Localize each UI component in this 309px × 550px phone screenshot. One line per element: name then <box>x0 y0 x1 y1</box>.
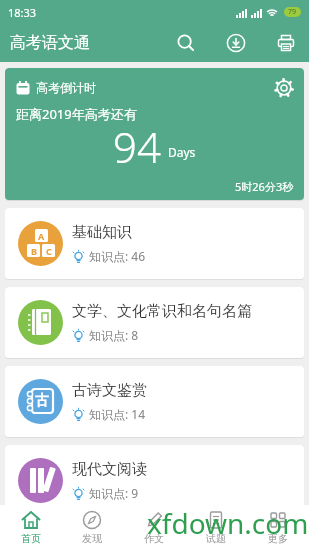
staticText: 知识点: 9 <box>89 485 139 501</box>
staticText: 5时26分3秒 <box>235 179 294 194</box>
button[interactable]: 高考倒计时 <box>5 68 304 201</box>
staticText: 距离2019年高考还有 <box>16 105 137 123</box>
button[interactable] <box>272 76 296 100</box>
staticText: 基础知识 <box>72 223 132 242</box>
staticText: 发现 <box>82 532 102 545</box>
button[interactable]: A <box>5 208 304 280</box>
staticText: 首页 <box>21 532 41 545</box>
staticText: 古 <box>35 392 49 410</box>
staticText: 知识点: 14 <box>89 406 146 422</box>
staticText: 现代文阅读 <box>72 460 147 479</box>
button[interactable]: 现代文阅读 <box>5 445 304 517</box>
staticText: 高考倒计时 <box>36 80 96 95</box>
staticText: 知识点: 46 <box>89 248 146 264</box>
button[interactable]: 文学、文化常识和名句名篇 <box>5 287 304 359</box>
staticText: 94 <box>113 118 161 175</box>
button[interactable]: 发现 <box>61 505 123 550</box>
staticText: Days <box>168 144 196 160</box>
button[interactable] <box>170 27 202 59</box>
staticText: 79 <box>288 7 297 17</box>
staticText: 18:33 <box>8 5 37 20</box>
button[interactable]: 试题 <box>185 505 247 550</box>
staticText: 作文 <box>144 532 164 545</box>
staticText: 更多 <box>268 532 288 545</box>
button[interactable]: 更多 <box>247 505 309 550</box>
button[interactable] <box>270 27 302 59</box>
staticText: B <box>31 245 37 257</box>
staticText: xfdown.com <box>147 504 309 542</box>
button[interactable]: 作文 <box>123 505 185 550</box>
staticText: A <box>38 230 45 242</box>
button[interactable]: 古 <box>5 366 304 438</box>
staticText: 高考语文通 <box>10 33 90 53</box>
staticText: 文学、文化常识和名句名篇 <box>72 302 252 321</box>
staticText: C <box>46 245 52 257</box>
staticText: 古诗文鉴赏 <box>72 381 147 400</box>
button[interactable] <box>220 27 252 59</box>
button[interactable]: 首页 <box>0 505 61 550</box>
staticText: 试题 <box>206 532 226 545</box>
staticText: 知识点: 8 <box>89 327 139 343</box>
